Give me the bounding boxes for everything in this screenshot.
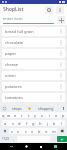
button[interactable]: Google: [2, 106, 6, 110]
button[interactable]: Recents: [37, 143, 44, 150]
staticText: l: [61, 121, 63, 126]
button[interactable]: .: [50, 136, 57, 142]
button[interactable]: Sort: [45, 6, 53, 14]
button[interactable]: b: [36, 128, 43, 134]
button[interactable]: v: [29, 128, 36, 134]
staticText: shopping: [38, 106, 54, 111]
button[interactable]: s: [9, 120, 16, 126]
button[interactable]: l: [58, 120, 65, 126]
button[interactable]: Keyboard: [52, 143, 59, 150]
button[interactable]: cheese: [2, 60, 65, 69]
button[interactable]: Item options: [59, 49, 63, 58]
button[interactable]: ?123: [0, 136, 10, 142]
staticText: ,: [13, 137, 14, 141]
staticText: .: [53, 137, 54, 141]
button[interactable]: g: [30, 120, 37, 126]
staticText: f: [26, 121, 28, 126]
button[interactable]: a: [2, 120, 9, 126]
button[interactable]: Enter: [57, 136, 67, 142]
staticText: c: [25, 129, 27, 134]
button[interactable]: t: [25, 112, 32, 118]
staticText: e: [14, 113, 17, 118]
button[interactable]: Backspace: [57, 128, 67, 134]
staticText: p: [62, 113, 65, 118]
button[interactable]: Voice input: [61, 106, 65, 110]
button[interactable]: Item options: [59, 60, 63, 69]
staticText: h: [39, 121, 42, 126]
button[interactable]: y: [32, 112, 39, 118]
button[interactable]: Home: [23, 143, 30, 150]
staticText: ?123: [2, 137, 9, 141]
staticText: q: [2, 113, 5, 118]
button[interactable]: x: [15, 128, 22, 134]
button[interactable]: i: [46, 112, 53, 118]
button[interactable]: u: [39, 112, 46, 118]
button[interactable]: p: [60, 112, 67, 118]
staticText: y: [34, 113, 37, 118]
button[interactable]: chocolate: [2, 38, 65, 47]
button[interactable]: Item options: [59, 82, 63, 91]
button[interactable]: Item options: [59, 27, 63, 36]
staticText: j: [47, 121, 49, 126]
button[interactable]: e: [12, 112, 18, 118]
staticText: t: [28, 113, 30, 118]
staticText: v: [31, 129, 34, 134]
staticText: tomatoes: [5, 95, 23, 100]
staticText: d: [18, 121, 21, 126]
staticText: chocolate: [5, 40, 24, 45]
staticText: potatoes: [5, 84, 22, 89]
button[interactable]: ,: [10, 136, 17, 142]
button[interactable]: potatoes: [2, 82, 65, 91]
staticText: enter item: [3, 16, 23, 21]
staticText: i: [49, 113, 51, 118]
staticText: z: [11, 129, 13, 134]
button[interactable]: c: [22, 128, 29, 134]
staticText: x: [17, 129, 20, 134]
button[interactable]: Add item: [57, 16, 65, 24]
button[interactable]: q: [0, 112, 6, 118]
staticText: g: [32, 121, 35, 126]
staticText: b: [38, 129, 41, 134]
button[interactable]: d: [16, 120, 23, 126]
staticText: s: [12, 121, 14, 126]
staticText: onion: [5, 73, 16, 78]
button[interactable]: paper: [2, 49, 65, 58]
button[interactable]: Item options: [59, 93, 63, 102]
button[interactable]: h: [37, 120, 44, 126]
button[interactable]: More options: [56, 6, 64, 14]
button[interactable]: n: [43, 128, 50, 134]
staticText: m: [52, 129, 56, 134]
button[interactable]: Back: [8, 143, 15, 150]
button[interactable]: tomatoes: [2, 93, 65, 102]
button[interactable]: f: [23, 120, 30, 126]
staticText: k: [53, 121, 56, 126]
button[interactable]: j: [44, 120, 51, 126]
staticText: ShopList: [3, 6, 24, 13]
staticText: w: [7, 113, 11, 118]
staticText: a: [4, 121, 7, 126]
staticText: shops: [12, 106, 22, 111]
button[interactable]: z: [9, 128, 15, 134]
button[interactable]: w: [6, 112, 12, 118]
staticText: cheese: [5, 62, 19, 67]
staticText: o: [55, 113, 58, 118]
staticText: paper: [5, 51, 17, 56]
button[interactable]: onion: [2, 71, 65, 80]
button[interactable]: Shift: [0, 128, 9, 134]
button[interactable]: Item options: [59, 38, 63, 47]
staticText: n: [45, 129, 48, 134]
button[interactable]: bread full grain: [2, 27, 65, 36]
button[interactable]: r: [18, 112, 25, 118]
button[interactable]: o: [53, 112, 60, 118]
button[interactable]: m: [50, 128, 57, 134]
staticText: u: [41, 113, 44, 118]
button[interactable]: Item options: [59, 71, 63, 80]
staticText: bread full grain: [5, 29, 34, 34]
button[interactable]: k: [51, 120, 58, 126]
staticText: r: [21, 113, 23, 118]
